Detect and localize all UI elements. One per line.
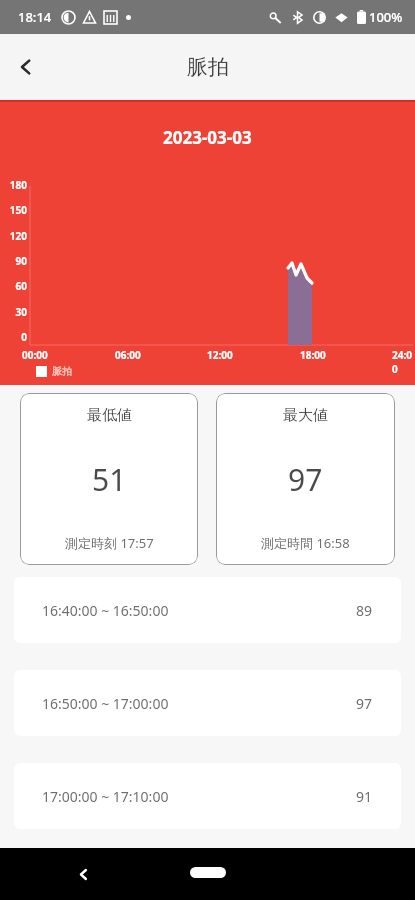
staticText: 51 bbox=[92, 459, 127, 500]
button[interactable]: Back bbox=[0, 41, 52, 93]
button[interactable]: 最低値 bbox=[20, 393, 198, 565]
staticText: 2023-03-03 bbox=[163, 126, 252, 149]
button[interactable]: 16:40:00 ~ 16:50:00 bbox=[14, 577, 401, 643]
staticText: 最低値 bbox=[87, 406, 132, 425]
staticText: 12:00 bbox=[207, 348, 233, 362]
staticText: 0 bbox=[21, 330, 27, 344]
staticText: 最大値 bbox=[283, 406, 328, 425]
staticText: 18:00 bbox=[300, 348, 326, 362]
staticText: 97 bbox=[356, 694, 373, 713]
staticText: 100% bbox=[369, 8, 403, 26]
staticText: 17:00:00 ~ 17:10:00 bbox=[42, 787, 169, 806]
staticText: 30 bbox=[15, 305, 27, 319]
staticText: 24:00 bbox=[392, 348, 415, 376]
staticText: 測定時間 16:58 bbox=[261, 534, 350, 552]
button[interactable]: Home bbox=[190, 867, 226, 878]
staticText: 00:00 bbox=[22, 348, 48, 362]
button[interactable]: 16:50:00 ~ 17:00:00 bbox=[14, 670, 401, 736]
staticText: 97 bbox=[288, 459, 323, 500]
staticText: 16:50:00 ~ 17:00:00 bbox=[42, 694, 169, 713]
staticText: 16:40:00 ~ 16:50:00 bbox=[42, 601, 169, 620]
staticText: 測定時刻 17:57 bbox=[65, 534, 154, 552]
button[interactable]: 最大値 bbox=[216, 393, 395, 565]
staticText: 90 bbox=[15, 254, 27, 268]
button[interactable]: 17:00:00 ~ 17:10:00 bbox=[14, 763, 401, 829]
staticText: 脈拍 bbox=[52, 365, 72, 378]
staticText: 150 bbox=[9, 203, 27, 217]
staticText: 120 bbox=[9, 229, 27, 243]
staticText: 脈拍 bbox=[187, 54, 229, 80]
staticText: 60 bbox=[15, 279, 27, 293]
staticText: 180 bbox=[9, 178, 27, 192]
staticText: 18:14 bbox=[18, 8, 52, 26]
staticText: 91 bbox=[356, 787, 373, 806]
button[interactable]: Back bbox=[66, 857, 100, 891]
staticText: 89 bbox=[356, 601, 373, 620]
staticText: 06:00 bbox=[115, 348, 141, 362]
